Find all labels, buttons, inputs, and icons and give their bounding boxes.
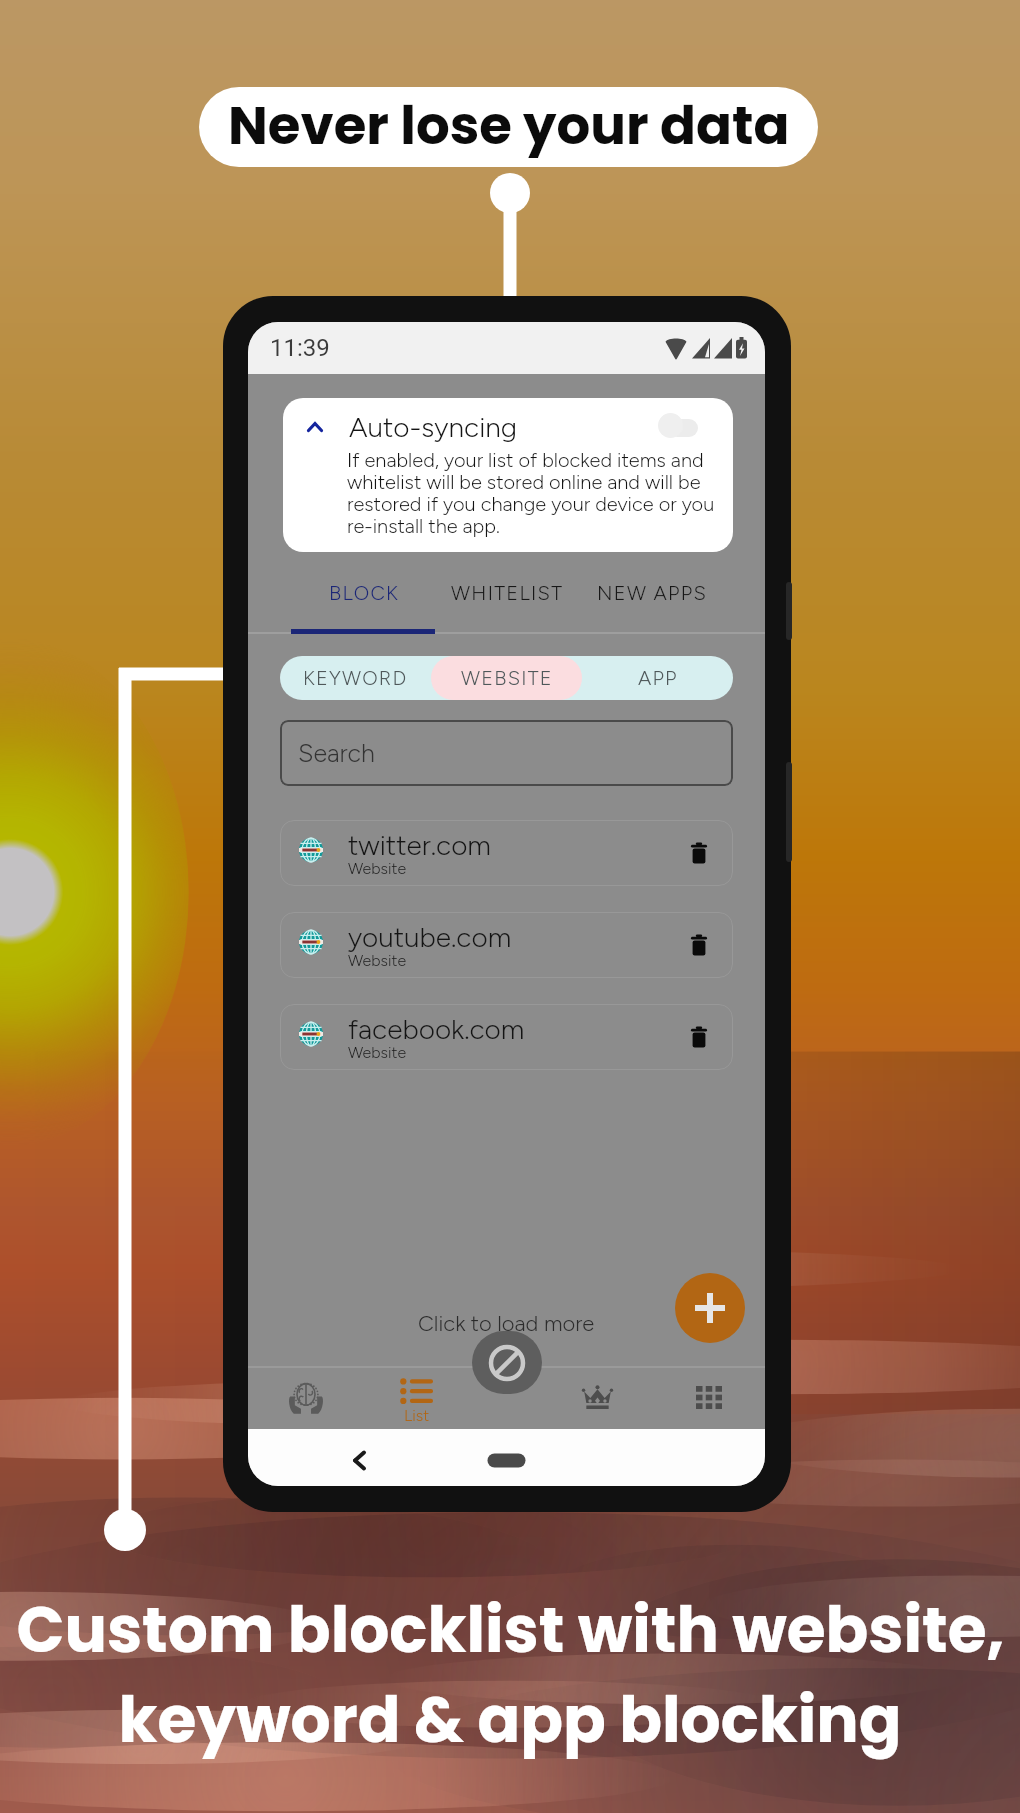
button[interactable]: Search [280,720,733,786]
staticText: 11:39 [270,334,330,362]
staticText: Auto-syncing [349,410,518,444]
button[interactable]: Delete youtube.com [677,923,721,967]
staticText: Search [298,738,375,768]
staticText: BLOCK [329,581,400,605]
staticText: Never lose your data [228,88,790,162]
button[interactable]: BLOCK [291,570,437,634]
staticText: Website [348,951,407,970]
staticText: WEBSITE [461,666,553,690]
button[interactable]: Auto-syncing [283,398,733,552]
staticText: APP [638,666,678,690]
button[interactable]: APP [582,656,733,700]
button[interactable]: Block now [472,1331,542,1394]
button[interactable]: Delete twitter.com [677,831,721,875]
button[interactable]: twitter.com [280,820,733,886]
button[interactable]: KEYWORD [280,656,431,700]
button[interactable]: facebook.com [280,1004,733,1070]
staticText: If enabled, your list of blocked items a… [347,448,715,538]
staticText: Custom blocklist with website, [16,1586,1005,1674]
staticText: Click to load more [418,1310,595,1336]
staticText: KEYWORD [303,666,408,690]
button[interactable]: Delete facebook.com [677,1015,721,1059]
button[interactable]: Focus [258,1366,354,1429]
button[interactable]: WHITELIST [431,570,583,634]
button[interactable]: Add [675,1273,745,1343]
button[interactable]: Click to load more [418,1310,595,1336]
button[interactable]: Apps [661,1366,757,1429]
staticText: keyword & app blocking [118,1676,902,1764]
button[interactable]: WEBSITE [431,656,582,700]
staticText: facebook.com [348,1012,525,1046]
staticText: twitter.com [348,828,491,862]
staticText: List [404,1406,430,1425]
button[interactable]: youtube.com [280,912,733,978]
staticText: youtube.com [348,920,512,954]
staticText: Website [348,859,407,878]
staticText: Website [348,1043,407,1062]
staticText: WHITELIST [451,581,564,605]
button[interactable]: NEW APPS [587,570,717,634]
button[interactable]: Auto-syncing toggle [658,410,702,440]
button[interactable]: Premium [549,1366,645,1429]
button[interactable]: Never lose your data [199,87,818,167]
button[interactable]: List [368,1366,464,1429]
staticText: NEW APPS [597,581,708,605]
